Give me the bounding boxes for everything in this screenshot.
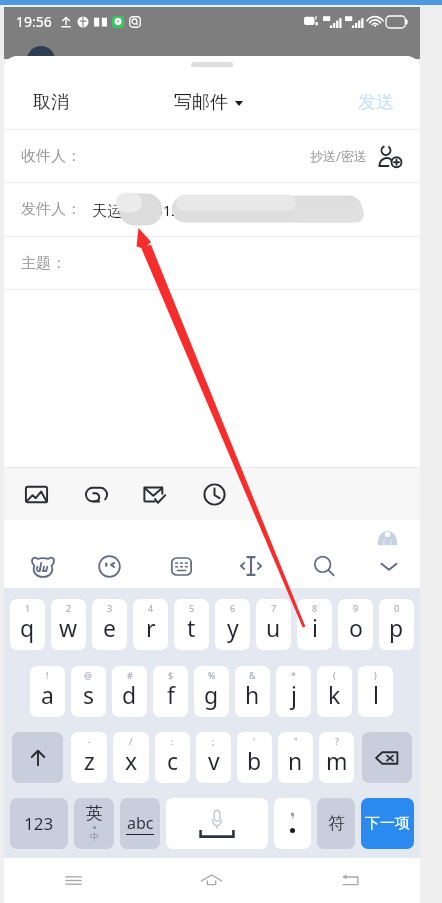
staticText: 1 [25, 602, 31, 614]
button[interactable]: 2 [51, 599, 86, 650]
button[interactable]: 符 [317, 798, 355, 849]
staticText: 9 [353, 602, 359, 614]
button[interactable]: 写邮件 [167, 75, 250, 129]
staticText: 发件人： [21, 200, 81, 219]
staticText: " [294, 735, 298, 747]
staticText: & [249, 669, 256, 681]
button[interactable]: 最近任务 [4, 858, 142, 903]
button[interactable]: 返回 [281, 858, 420, 903]
button[interactable]: 4 [133, 599, 168, 650]
staticText: k [328, 679, 341, 710]
button[interactable]: 8 [297, 599, 332, 650]
button[interactable]: 定时发送 [196, 467, 232, 520]
button[interactable]: - [71, 732, 107, 783]
staticText: p [389, 612, 404, 643]
staticText: 8 [312, 602, 318, 614]
button[interactable]: 主页 [142, 858, 281, 903]
staticText: a [41, 679, 54, 710]
staticText: n [288, 745, 303, 776]
staticText: s [83, 679, 95, 710]
staticText: l [373, 679, 379, 710]
button[interactable]: 英 [74, 798, 114, 849]
button[interactable]: 输入法设置 [21, 544, 65, 588]
button[interactable]: 123 [10, 798, 68, 849]
staticText: 123 [24, 812, 54, 835]
button[interactable]: 5 [174, 599, 209, 650]
staticText: 发送 [358, 91, 394, 114]
button[interactable]: 发送 [332, 75, 420, 129]
button[interactable]: % [194, 666, 229, 717]
button[interactable]: 主题： [4, 237, 420, 289]
staticText: % [208, 669, 216, 681]
button[interactable]: 9 [338, 599, 373, 650]
staticText: ) [374, 669, 377, 681]
staticText: ; [212, 735, 215, 747]
button[interactable]: 收件人： [4, 130, 420, 182]
staticText: x [125, 745, 138, 776]
button[interactable]: 搜索 [302, 544, 346, 588]
staticText: 符 [328, 813, 345, 834]
staticText: 3 [107, 602, 113, 614]
staticText: b [247, 745, 262, 776]
staticText: i [312, 612, 318, 643]
staticText: 19:56 [16, 12, 52, 31]
button[interactable]: # [112, 666, 147, 717]
staticText: 7 [271, 602, 277, 614]
button[interactable]: @ [71, 666, 106, 717]
staticText: ? [335, 735, 339, 747]
button[interactable]: 键盘布局 [159, 544, 203, 588]
button[interactable] [274, 798, 311, 849]
button[interactable]: * [276, 666, 311, 717]
button[interactable]: ) [358, 666, 393, 717]
staticText: z [84, 745, 95, 776]
button[interactable]: 取消 [4, 75, 98, 129]
button[interactable]: 发件人： [4, 183, 420, 236]
button[interactable]: 下一项 [361, 798, 414, 849]
staticText: 写邮件 [174, 91, 228, 114]
button[interactable]: / [113, 732, 149, 783]
staticText: - [88, 735, 91, 747]
button[interactable]: 已读回执 [136, 467, 172, 520]
staticText: t [187, 612, 196, 643]
button[interactable]: 表情 [87, 544, 131, 588]
button[interactable]: 收起键盘 [367, 544, 411, 588]
staticText: g [204, 679, 219, 710]
button[interactable]: 1 [10, 599, 45, 650]
button[interactable]: 添加附件 [78, 467, 114, 520]
button[interactable]: ! [30, 666, 65, 717]
button[interactable]: ' [237, 732, 272, 783]
button[interactable]: ( [317, 666, 352, 717]
button[interactable]: abc [120, 798, 160, 849]
staticText: 中 [90, 831, 99, 842]
button[interactable]: ; [196, 732, 231, 783]
staticText: ! [46, 669, 49, 681]
staticText: w [59, 612, 78, 643]
button[interactable]: $ [153, 666, 188, 717]
button[interactable]: 0 [379, 599, 414, 650]
other: 添加抄送联系人 [378, 144, 403, 169]
button[interactable]: 空格 [166, 798, 268, 849]
button[interactable]: " [278, 732, 313, 783]
staticText: f [167, 679, 175, 710]
staticText: 下一项 [365, 814, 410, 833]
staticText: d [122, 679, 137, 710]
staticText: c [167, 745, 179, 776]
staticText: 收件人： [21, 147, 81, 166]
button[interactable]: 6 [215, 599, 250, 650]
staticText: ( [333, 669, 336, 681]
button[interactable]: 插入图片 [18, 467, 54, 520]
button[interactable]: 3 [92, 599, 127, 650]
staticText: # [127, 669, 133, 681]
button[interactable]: : [155, 732, 190, 783]
staticText: e [103, 612, 116, 643]
button[interactable]: 删除 [362, 732, 412, 783]
button[interactable]: & [235, 666, 270, 717]
staticText: u [266, 612, 281, 643]
button[interactable]: ? [319, 732, 354, 783]
button[interactable]: 移动光标 [229, 544, 273, 588]
staticText: 6 [230, 602, 236, 614]
staticText: 抄送/密送 [310, 147, 367, 165]
button[interactable]: Shift [12, 732, 63, 783]
button[interactable]: 7 [256, 599, 291, 650]
staticText: 取消 [33, 91, 69, 114]
